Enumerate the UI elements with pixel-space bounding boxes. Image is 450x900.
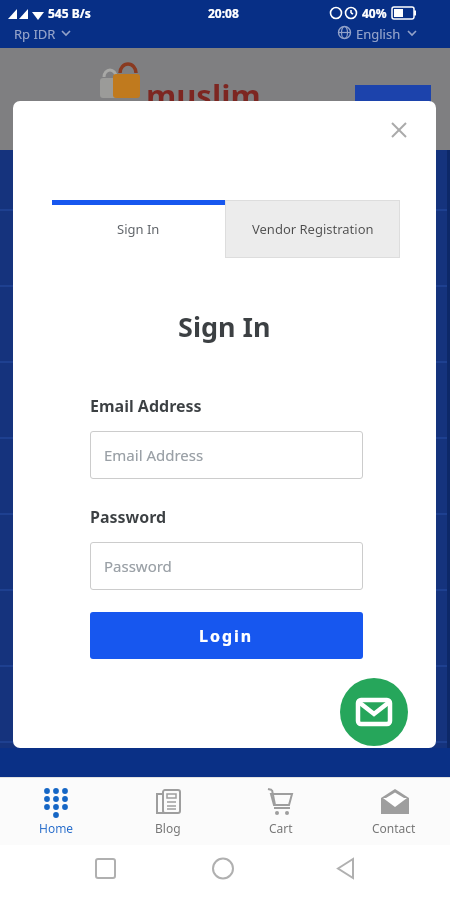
button[interactable]: Blog <box>112 787 224 845</box>
staticText: 40% <box>362 5 387 21</box>
staticText: Blog <box>155 820 181 836</box>
staticText: Email Address <box>104 445 204 465</box>
button[interactable]: Vendor Registration <box>225 200 400 258</box>
staticText: Sign In <box>117 220 160 238</box>
staticText: Password <box>104 556 172 576</box>
staticText: 545 B/s <box>48 5 91 21</box>
staticText: Home <box>39 820 74 836</box>
button[interactable]: Login <box>90 612 363 659</box>
button[interactable]: Email Address <box>90 431 363 479</box>
button[interactable]: Home <box>0 787 112 845</box>
staticText: English <box>356 25 401 43</box>
button[interactable] <box>383 114 415 146</box>
staticText: Email Address <box>90 395 202 417</box>
button[interactable]: Rp IDR <box>14 23 76 43</box>
button[interactable]: Contact <box>337 787 450 845</box>
staticText: muslim <box>146 74 261 116</box>
staticText: Password <box>90 506 167 528</box>
staticText: Login <box>199 625 254 647</box>
button[interactable]: English <box>338 23 420 43</box>
button[interactable]: Password <box>90 542 363 590</box>
staticText: Cart <box>269 820 293 836</box>
staticText: Sign In <box>178 308 271 345</box>
staticText: Contact <box>372 820 416 836</box>
staticText: 20:08 <box>208 5 239 21</box>
button[interactable]: HALAL <box>355 85 431 125</box>
button[interactable] <box>340 678 408 746</box>
staticText: Rp IDR <box>14 25 56 43</box>
button[interactable]: Cart <box>224 787 337 845</box>
staticText: Vendor Registration <box>252 220 374 238</box>
button[interactable]: Sign In <box>52 200 225 258</box>
staticText: HALAL <box>375 98 411 113</box>
